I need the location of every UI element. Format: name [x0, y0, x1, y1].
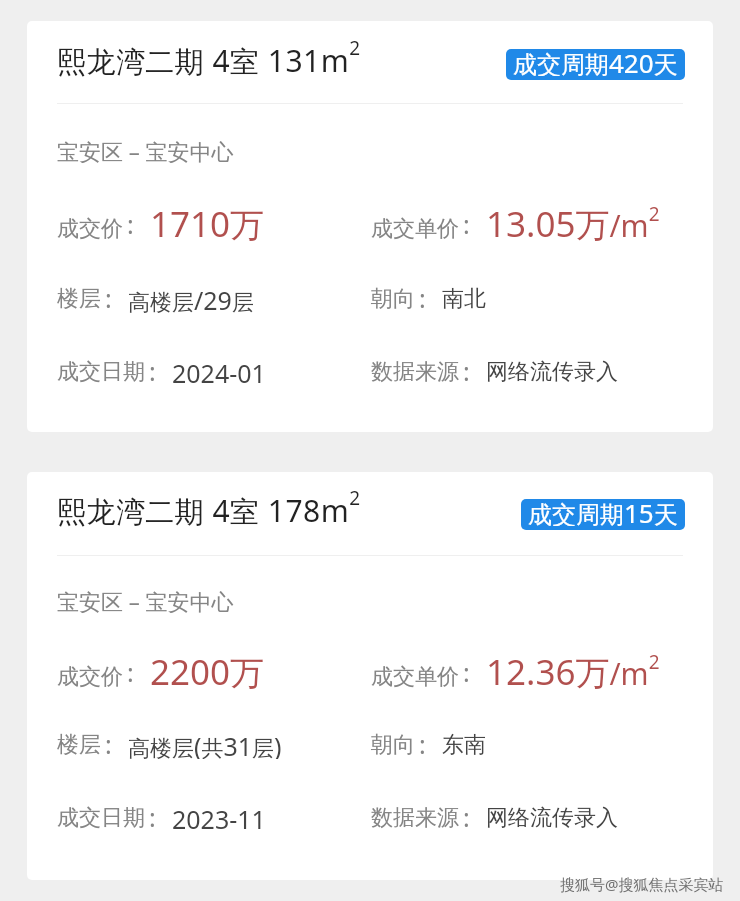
staticText: 2024-01 — [172, 356, 266, 386]
staticText: 成交单价 — [371, 215, 459, 243]
staticText: 搜狐号@搜狐焦点采宾站 — [560, 874, 724, 894]
staticText: : — [463, 207, 470, 241]
staticText: : — [127, 207, 134, 241]
staticText: 12.36万/m2 — [486, 648, 660, 692]
staticText: 熙龙湾二期 4室 178m2 — [57, 485, 361, 531]
staticText: 成交周期15天 — [528, 499, 678, 526]
staticText: 南北 — [442, 285, 486, 313]
staticText: 数据来源 — [371, 804, 459, 832]
staticText: 成交单价 — [371, 663, 459, 691]
staticText: : — [463, 800, 470, 830]
staticText: 楼层 — [57, 731, 101, 759]
staticText: 高楼层(共31层) — [128, 729, 282, 759]
staticText: 1710万 — [150, 200, 265, 244]
staticText: : — [105, 281, 112, 311]
staticText: : — [127, 655, 134, 689]
staticText: : — [463, 655, 470, 689]
staticText: 成交价 — [57, 663, 123, 691]
staticText: : — [149, 800, 156, 830]
staticText: 成交价 — [57, 215, 123, 243]
staticText: 宝安区 – 宝安中心 — [57, 586, 234, 616]
staticText: 13.05万/m2 — [486, 200, 660, 244]
staticText: 成交日期 — [57, 358, 145, 386]
staticText: 成交周期420天 — [513, 49, 678, 76]
staticText: 朝向 — [371, 285, 415, 313]
staticText: 数据来源 — [371, 358, 459, 386]
staticText: 东南 — [442, 731, 486, 759]
staticText: 宝安区 – 宝安中心 — [57, 136, 234, 166]
staticText: : — [419, 727, 426, 757]
button[interactable]: 成交周期420天 — [513, 49, 678, 80]
staticText: 熙龙湾二期 4室 131m2 — [57, 35, 361, 81]
staticText: : — [105, 727, 112, 757]
staticText: 网络流传录入 — [486, 804, 618, 832]
staticText: 高楼层/29层 — [128, 283, 254, 313]
button[interactable]: 成交周期15天 — [528, 499, 678, 530]
staticText: : — [149, 354, 156, 384]
staticText: 2200万 — [150, 648, 265, 692]
staticText: 成交日期 — [57, 804, 145, 832]
staticText: : — [463, 354, 470, 384]
staticText: 网络流传录入 — [486, 358, 618, 386]
button[interactable]: 熙龙湾二期 4室 131m2 — [27, 21, 713, 432]
staticText: : — [419, 281, 426, 311]
staticText: 朝向 — [371, 731, 415, 759]
staticText: 2023-11 — [172, 802, 266, 832]
staticText: 楼层 — [57, 285, 101, 313]
button[interactable]: 熙龙湾二期 4室 178m2 — [27, 472, 713, 880]
